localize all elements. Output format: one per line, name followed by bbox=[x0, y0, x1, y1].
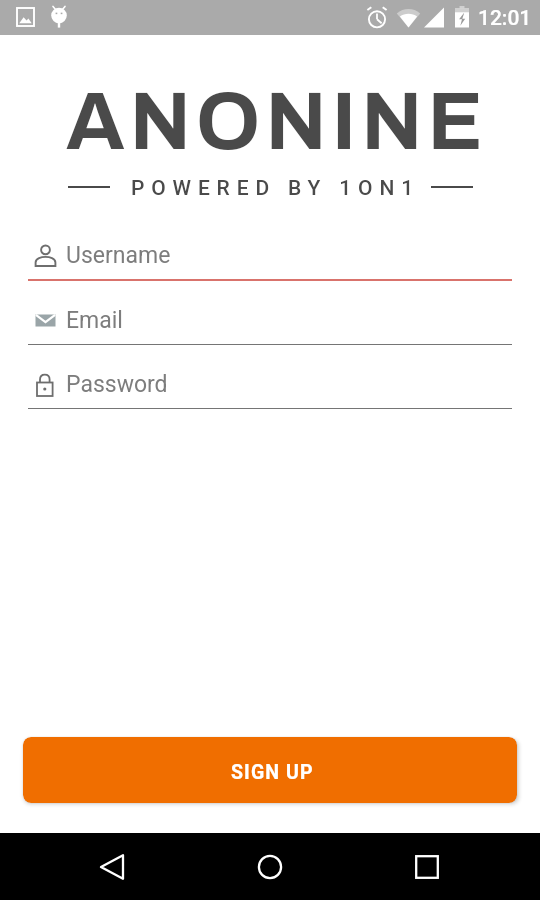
button[interactable]: Back bbox=[79, 834, 145, 900]
staticText: SIGN UP bbox=[231, 761, 314, 784]
button[interactable]: SIGN UP bbox=[23, 737, 517, 803]
staticText: Email bbox=[66, 307, 123, 334]
button[interactable]: Email bbox=[0, 281, 540, 345]
button[interactable]: Username bbox=[0, 216, 540, 281]
staticText: ANONINE bbox=[7, 78, 540, 166]
staticText: Username bbox=[66, 242, 171, 269]
staticText: POWERED BY 1ON1 bbox=[131, 176, 420, 198]
button[interactable]: Recent apps bbox=[394, 834, 460, 900]
button[interactable]: Home bbox=[237, 834, 303, 900]
staticText: Password bbox=[66, 371, 168, 398]
staticText: 12:01 bbox=[478, 6, 532, 31]
button[interactable]: Password bbox=[0, 345, 540, 409]
